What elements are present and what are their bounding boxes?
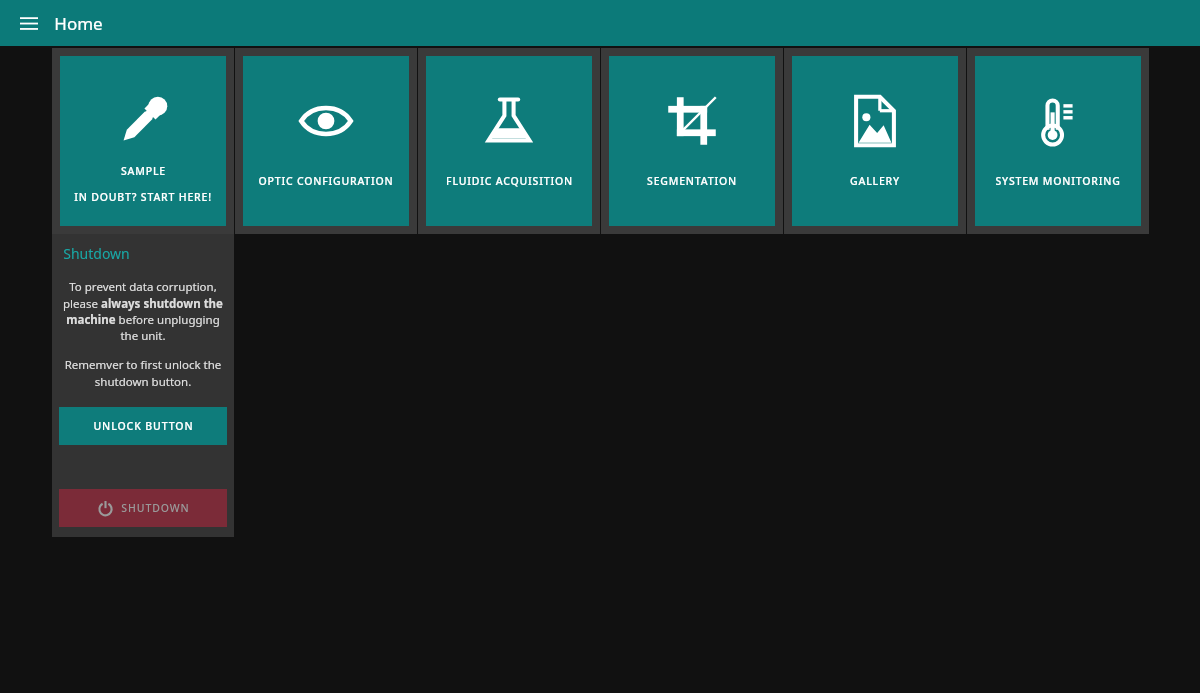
staticText: UNLOCK BUTTON [93,419,194,433]
button[interactable]: FLUIDIC ACQUISITION [426,56,592,226]
staticText: FLUIDIC ACQUISITION [446,174,573,188]
button[interactable]: SEGMENTATION [609,56,775,226]
staticText: GALLERY [850,174,900,188]
button[interactable]: GALLERY [792,56,958,226]
button[interactable]: UNLOCK BUTTON [59,407,227,445]
staticText: SEGMENTATION [647,174,737,188]
button[interactable]: Open navigation menu [12,6,46,40]
staticText: SYSTEM MONITORING [995,174,1121,188]
staticText: OPTIC CONFIGURATION [258,174,394,188]
staticText: Rememver to first unlock the shutdown bu… [62,357,224,389]
staticText: IN DOUBT? START HERE! [74,190,212,204]
staticText: Shutdown [63,244,130,263]
button[interactable]: SAMPLE [60,56,226,226]
staticText: Home [54,12,103,35]
button[interactable]: SHUTDOWN [59,489,227,527]
staticText: SAMPLE [121,164,166,178]
button[interactable]: OPTIC CONFIGURATION [243,56,409,226]
button[interactable]: SYSTEM MONITORING [975,56,1141,226]
staticText: SHUTDOWN [121,501,190,515]
staticText: To prevent data corruption, please alway… [62,279,224,343]
